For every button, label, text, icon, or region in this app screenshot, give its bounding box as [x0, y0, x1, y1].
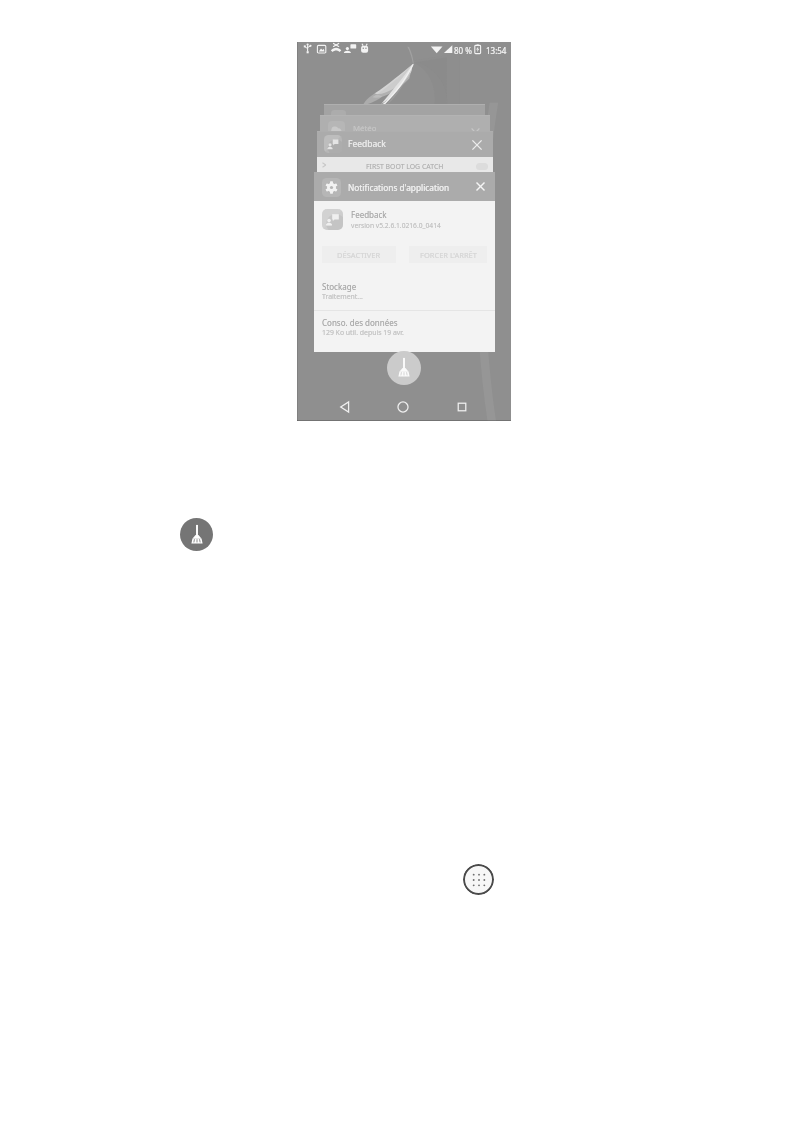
staticText: 13:54: [486, 45, 507, 56]
staticText: FIRST BOOT LOG CATCH: [366, 162, 444, 171]
staticText: Notifications d'application: [348, 182, 450, 193]
staticText: Feedback: [351, 209, 387, 220]
button[interactable]: Clear all: [387, 351, 421, 385]
button[interactable]: Stockage: [314, 279, 495, 309]
button[interactable]: Close notifications: [475, 181, 486, 192]
staticText: version v5.2.6.1.0216.0_0414: [351, 221, 441, 230]
staticText: Traitement...: [322, 292, 363, 301]
button[interactable]: Clear all: [180, 518, 213, 551]
button[interactable]: All apps: [463, 864, 494, 895]
button[interactable]: Recent apps: [453, 398, 471, 416]
button[interactable]: Collapse: [470, 125, 481, 136]
button[interactable]: Feedback: [317, 131, 493, 157]
staticText: FORCER L'ARRÊT: [420, 250, 477, 260]
staticText: Stockage: [322, 281, 357, 292]
button[interactable]: Météo: [320, 115, 490, 145]
staticText: Feedback: [348, 138, 386, 150]
staticText: Météo: [353, 123, 377, 134]
button[interactable]: [324, 104, 485, 134]
staticText: 80 %: [454, 45, 472, 56]
button[interactable]: FORCER L'ARRÊT: [409, 246, 487, 263]
button[interactable]: Notifications d'application: [314, 172, 495, 201]
button[interactable]: FIRST BOOT LOG CATCH: [317, 157, 493, 173]
button[interactable]: Close Feedback: [471, 139, 483, 151]
staticText: 129 Ko util. depuis 19 avr.: [322, 328, 404, 337]
staticText: Conso. des données: [322, 317, 398, 328]
staticText: DÉSACTIVER: [337, 250, 381, 260]
button[interactable]: DÉSACTIVER: [322, 246, 396, 263]
button[interactable]: Conso. des données: [314, 315, 495, 345]
button[interactable]: Home: [394, 398, 412, 416]
button[interactable]: Back: [336, 398, 354, 416]
